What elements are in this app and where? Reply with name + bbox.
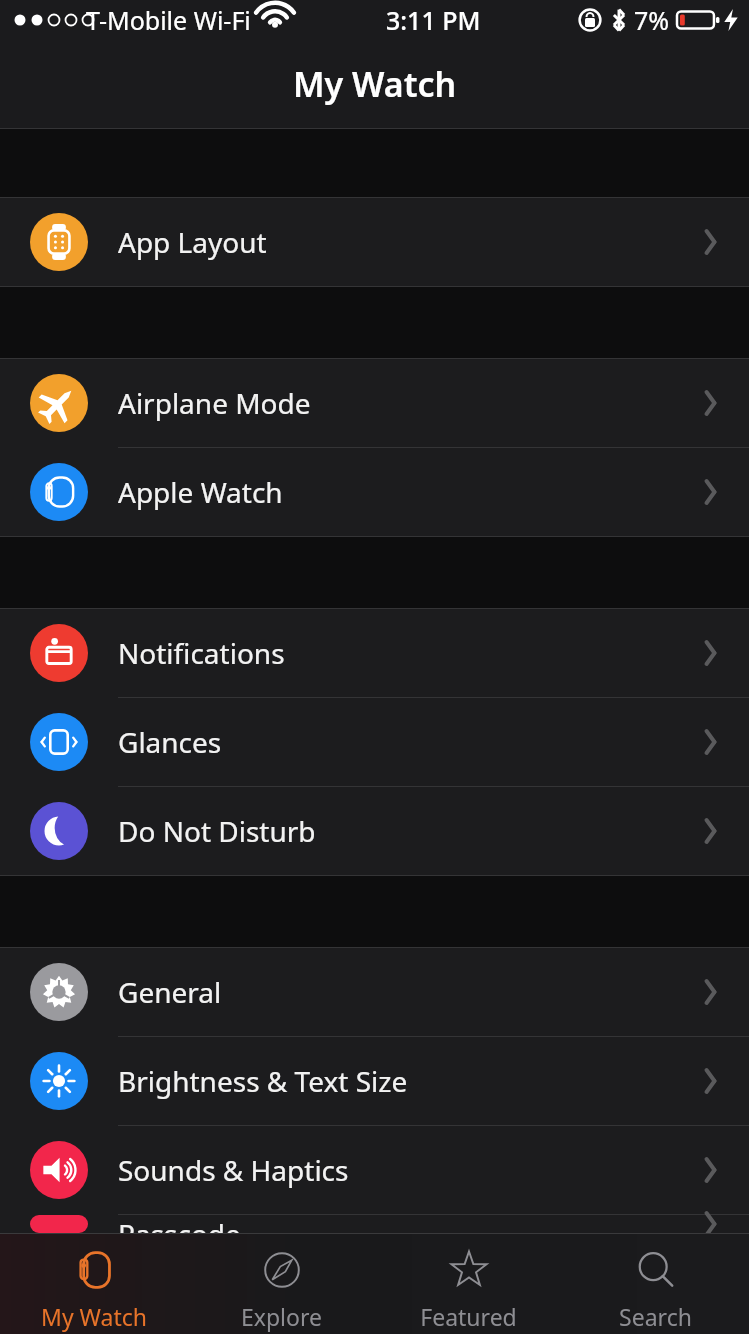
staticText: Explore [241,1301,322,1332]
staticText: 3:11 PM [386,3,481,37]
button[interactable]: Brightness & Text Size [0,1037,749,1126]
button[interactable]: Featured [375,1239,562,1334]
staticText: App Layout [118,223,267,261]
staticText: Passcode [118,1215,241,1233]
button[interactable]: Explore [188,1239,375,1334]
staticText: Sounds & Haptics [118,1151,349,1189]
button[interactable]: Airplane Mode [0,359,749,448]
button[interactable]: App Layout [0,198,749,287]
button[interactable]: Apple Watch [0,448,749,537]
button[interactable]: Sounds & Haptics [0,1126,749,1215]
staticText: Apple Watch [118,473,283,511]
staticText: Airplane Mode [118,384,311,422]
button[interactable]: Passcode [0,1215,749,1233]
staticText: Search [619,1301,692,1332]
button[interactable]: Search [562,1239,749,1334]
staticText: General [118,973,222,1011]
staticText: Featured [420,1301,517,1332]
staticText: My Watch [41,1301,147,1332]
button[interactable]: General [0,948,749,1037]
button[interactable]: Notifications [0,609,749,698]
staticText: Brightness & Text Size [118,1062,408,1100]
button[interactable]: Glances [0,698,749,787]
staticText: T-Mobile Wi-Fi [86,3,251,37]
staticText: Notifications [118,634,285,672]
staticText: Glances [118,723,222,761]
staticText: My Watch [293,61,457,107]
staticText: Do Not Disturb [118,812,316,850]
button[interactable]: My Watch [0,1239,188,1334]
staticText: 7% [634,3,670,37]
button[interactable]: Do Not Disturb [0,787,749,876]
